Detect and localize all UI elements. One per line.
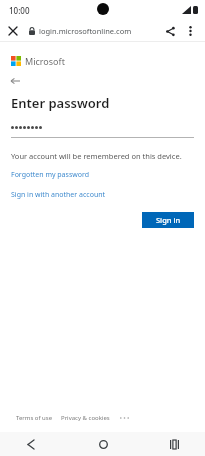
button[interactable]: Sign in with another account	[11, 190, 106, 200]
button[interactable]	[11, 123, 194, 138]
button[interactable]: Close	[4, 22, 22, 40]
button[interactable]: Terms of use	[16, 414, 53, 422]
staticText: Terms of use	[16, 414, 53, 422]
staticText: 10:00	[9, 5, 30, 16]
staticText: Privacy & cookies	[61, 414, 110, 422]
staticText: login.microsoftonline.com	[39, 26, 132, 36]
staticText: Microsoft	[25, 55, 65, 67]
staticText: Your account will be remembered on this …	[11, 151, 182, 161]
staticText: Sign in with another account	[11, 190, 106, 200]
button[interactable]: Forgotten my password	[11, 170, 90, 180]
button[interactable]: Back	[11, 74, 25, 88]
button[interactable]: Privacy & cookies	[61, 414, 110, 422]
button[interactable]: More options	[181, 22, 199, 40]
button[interactable]: Share	[161, 22, 179, 40]
button[interactable]: More	[118, 414, 130, 422]
staticText: Enter password	[11, 94, 110, 112]
staticText: Forgotten my password	[11, 170, 90, 180]
button[interactable]: Sign in	[142, 212, 194, 228]
button[interactable]: Recent apps	[163, 433, 185, 455]
button[interactable]: Back	[20, 433, 42, 455]
staticText: Sign in	[156, 215, 181, 225]
button[interactable]: Home	[92, 433, 114, 455]
